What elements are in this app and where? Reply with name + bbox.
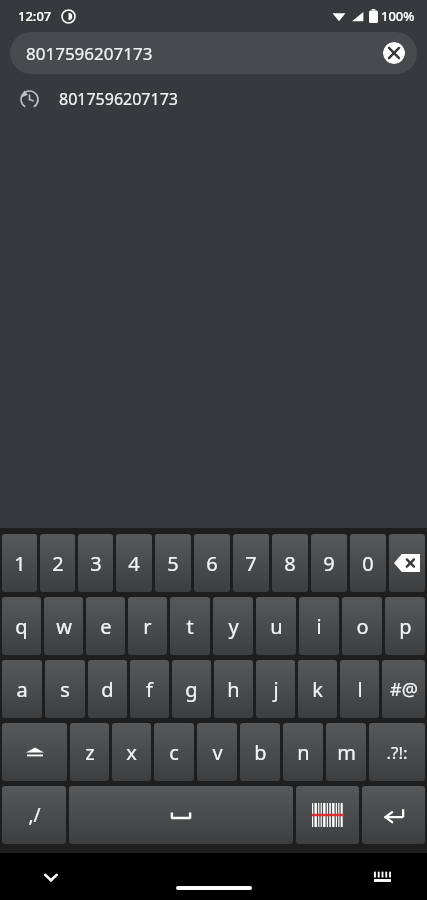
staticText: 9	[323, 550, 335, 577]
button[interactable]: 1	[2, 534, 37, 592]
button[interactable]: c	[154, 723, 194, 781]
button[interactable]: 7	[233, 534, 269, 592]
staticText: q	[15, 613, 28, 640]
button[interactable]: r	[128, 597, 167, 655]
staticText: r	[143, 613, 152, 640]
button[interactable]: Scan barcode	[296, 786, 359, 844]
button[interactable]: 2	[40, 534, 75, 592]
button[interactable]: #@	[382, 660, 425, 718]
button[interactable]: Clear query	[383, 42, 405, 64]
button[interactable]: p	[385, 597, 425, 655]
staticText: 5	[167, 550, 179, 577]
staticText: 0	[362, 550, 374, 577]
staticText: 7	[245, 550, 257, 577]
staticText: x	[126, 739, 137, 766]
button[interactable]: 6	[194, 534, 230, 592]
button[interactable]: t	[170, 597, 210, 655]
button[interactable]: Space	[69, 786, 293, 844]
staticText: d	[101, 676, 114, 703]
button[interactable]: n	[283, 723, 323, 781]
button[interactable]: u	[256, 597, 296, 655]
button[interactable]: 8017596207173	[0, 74, 427, 124]
staticText: w	[56, 613, 72, 640]
staticText: j	[273, 676, 279, 703]
button[interactable]: d	[88, 660, 127, 718]
button[interactable]: i	[299, 597, 339, 655]
button[interactable]: .?!:	[369, 723, 425, 781]
staticText: 2	[52, 550, 64, 577]
staticText: 12:07	[18, 7, 52, 25]
button[interactable]: q	[2, 597, 41, 655]
button[interactable]: s	[45, 660, 85, 718]
staticText: p	[399, 613, 412, 640]
staticText: u	[270, 613, 283, 640]
button[interactable]: Backspace	[389, 534, 425, 592]
button[interactable]: 4	[116, 534, 152, 592]
button[interactable]: j	[256, 660, 295, 718]
staticText: o	[356, 613, 369, 640]
button[interactable]: y	[213, 597, 253, 655]
button[interactable]: 5	[155, 534, 191, 592]
button[interactable]: Switch keyboard	[365, 860, 399, 894]
button[interactable]: 8	[272, 534, 308, 592]
staticText: 8017596207173	[59, 88, 178, 110]
button[interactable]: l	[340, 660, 379, 718]
staticText: l	[357, 676, 363, 703]
staticText: e	[100, 613, 112, 640]
staticText: z	[85, 739, 95, 766]
button[interactable]: w	[44, 597, 83, 655]
button[interactable]: v	[197, 723, 237, 781]
staticText: t	[186, 613, 194, 640]
staticText: n	[297, 739, 310, 766]
staticText: m	[337, 739, 356, 766]
button[interactable]: a	[2, 660, 42, 718]
button[interactable]: z	[70, 723, 109, 781]
button[interactable]: Shift	[2, 723, 67, 781]
staticText: 8	[284, 550, 296, 577]
staticText: b	[254, 739, 267, 766]
button[interactable]: g	[172, 660, 211, 718]
staticText: k	[312, 676, 323, 703]
button[interactable]: Enter	[362, 786, 425, 844]
staticText: i	[316, 613, 322, 640]
staticText: ,/	[28, 802, 41, 828]
staticText: 3	[90, 550, 102, 577]
staticText: #@	[390, 677, 418, 702]
staticText: 1	[14, 550, 26, 577]
staticText: c	[169, 739, 179, 766]
button[interactable]: ,/	[2, 786, 66, 844]
staticText: s	[60, 676, 70, 703]
staticText: v	[212, 739, 223, 766]
staticText: .?!:	[386, 741, 408, 764]
staticText: 100%	[381, 7, 415, 25]
button[interactable]: x	[112, 723, 151, 781]
button[interactable]: m	[326, 723, 366, 781]
button[interactable]: 9	[311, 534, 347, 592]
button[interactable]: h	[214, 660, 253, 718]
button[interactable]: o	[342, 597, 382, 655]
staticText: h	[227, 676, 240, 703]
staticText: 8017596207173	[26, 42, 153, 65]
staticText: 6	[206, 550, 218, 577]
button[interactable]: 8017596207173	[10, 32, 417, 74]
staticText: y	[228, 613, 239, 640]
button[interactable]: 0	[350, 534, 386, 592]
button[interactable]: b	[240, 723, 280, 781]
staticText: g	[185, 676, 198, 703]
staticText: a	[16, 676, 28, 703]
staticText: 4	[128, 550, 140, 577]
button[interactable]: 3	[78, 534, 113, 592]
staticText: f	[146, 676, 153, 703]
button[interactable]: e	[86, 597, 125, 655]
button[interactable]: f	[130, 660, 169, 718]
button[interactable]: k	[298, 660, 337, 718]
button[interactable]: Hide keyboard	[34, 860, 68, 894]
